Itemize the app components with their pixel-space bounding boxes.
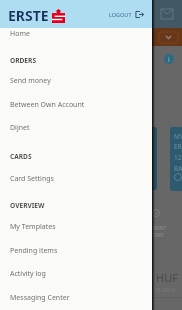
- staticText: MY ERSTE 1234 BANK: [174, 132, 182, 173]
- button[interactable]: My Templates: [0, 215, 152, 239]
- button[interactable]: Messages: [161, 9, 173, 19]
- staticText: Between Own Account: [10, 100, 85, 110]
- button[interactable]: Messaging Center: [0, 286, 152, 310]
- staticText: 01/2018: [155, 286, 176, 293]
- button[interactable]: Between Own Account: [0, 93, 152, 117]
- button[interactable]: Expand: [159, 32, 178, 43]
- button[interactable]: Activity log: [0, 262, 152, 286]
- staticText: Dijnet: [10, 123, 30, 133]
- staticText: Activity log: [10, 269, 46, 279]
- button[interactable]: MY ERSTE 1234 BANK: [170, 127, 182, 191]
- button[interactable]: LOGOUT: [109, 10, 144, 19]
- button[interactable]: Home: [0, 22, 152, 46]
- other: Logout: [135, 10, 144, 19]
- button[interactable]: Dijnet: [0, 116, 152, 140]
- staticText: Send money: [10, 76, 51, 86]
- button[interactable]: [105, 127, 157, 190]
- staticText: ERSTE: [8, 6, 49, 25]
- button[interactable]: Card Settings: [0, 167, 152, 191]
- staticText: HUF: [156, 270, 178, 285]
- staticText: LOGOUT: [109, 11, 132, 18]
- other: Account history: [152, 209, 160, 217]
- staticText: ACCOUNT HISTORY: [143, 225, 167, 239]
- staticText: Messaging Center: [10, 293, 70, 303]
- staticText: Pending items: [10, 246, 58, 256]
- button[interactable]: i: [164, 54, 174, 64]
- staticText: OVERVIEW: [10, 201, 45, 210]
- staticText: ORDERS: [10, 56, 37, 65]
- staticText: i: [168, 55, 170, 64]
- staticText: My Templates: [10, 222, 56, 232]
- staticText: Home: [10, 29, 30, 39]
- staticText: Card Settings: [10, 174, 54, 184]
- button[interactable]: Send money: [0, 69, 152, 93]
- staticText: CARDS: [10, 152, 32, 161]
- button[interactable]: Pending items: [0, 239, 152, 263]
